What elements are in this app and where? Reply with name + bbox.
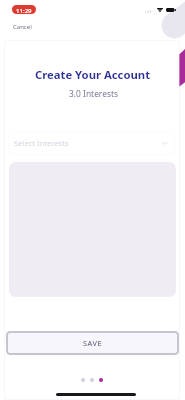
staticText: Select Interests: [14, 138, 69, 148]
staticText: Create Your Account: [0, 67, 185, 82]
staticText: SAVE: [83, 338, 103, 348]
button[interactable]: [81, 378, 85, 382]
staticText: Cancel: [13, 23, 32, 31]
button[interactable]: Select Interests: [8, 131, 175, 155]
staticText: 3.0 Interests: [1, 88, 185, 99]
button[interactable]: SAVE: [6, 331, 179, 355]
staticText: 11:29: [16, 6, 32, 14]
button[interactable]: Cancel: [13, 23, 32, 31]
other: Expand: [161, 139, 169, 147]
other: Wi-Fi: [157, 8, 163, 13]
other: Battery: [166, 8, 176, 12]
button[interactable]: [90, 378, 94, 382]
button[interactable]: [99, 378, 103, 382]
